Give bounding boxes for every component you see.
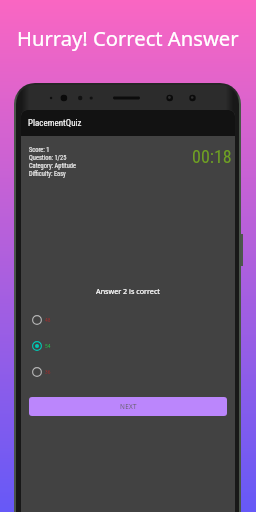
- staticText: 54: [45, 343, 51, 350]
- staticText: Question: 1/25: [29, 154, 67, 162]
- button[interactable]: PlacementQuiz: [21, 110, 235, 136]
- staticText: 00:18: [192, 146, 232, 167]
- staticText: PlacementQuiz: [28, 118, 82, 129]
- staticText: Score: 1: [29, 146, 50, 154]
- staticText: 48: [45, 317, 51, 324]
- staticText: Category: Aptitude: [29, 162, 76, 170]
- staticText: 36: [45, 369, 51, 376]
- button[interactable]: 36: [31, 364, 141, 380]
- button[interactable]: 54: [31, 338, 141, 354]
- staticText: NEXT: [120, 402, 137, 411]
- staticText: Difficulty: Easy: [29, 170, 66, 178]
- button[interactable]: NEXT: [29, 397, 227, 416]
- staticText: Hurray! Correct Answer: [17, 24, 239, 52]
- staticText: Answer 2 is correct: [21, 286, 235, 296]
- button[interactable]: 48: [31, 312, 141, 328]
